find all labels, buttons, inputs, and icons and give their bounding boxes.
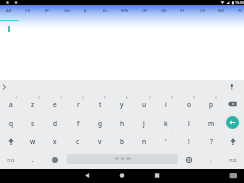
- staticText: ?123: [7, 158, 15, 163]
- staticText: GH: [64, 8, 70, 13]
- button[interactable]: ,: [22, 151, 44, 169]
- staticText: 8: [171, 96, 173, 100]
- button[interactable]: EF: [38, 5, 57, 16]
- button[interactable]: j: [133, 114, 155, 132]
- button[interactable]: IJ: [76, 5, 95, 16]
- staticText: 3: [60, 96, 62, 100]
- staticText: t: [99, 100, 102, 109]
- button[interactable]: m: [200, 114, 222, 132]
- button[interactable]: ?123: [0, 151, 22, 169]
- staticText: a: [9, 100, 13, 109]
- button[interactable]: p: [200, 95, 222, 113]
- button[interactable]: [44, 151, 66, 169]
- button[interactable]: [163, 169, 244, 183]
- staticText: FR · ES · EN: [115, 157, 131, 161]
- button[interactable]: l: [178, 114, 200, 132]
- button[interactable]: MN: [115, 5, 134, 16]
- button[interactable]: AB: [0, 5, 18, 16]
- button[interactable]: [222, 132, 244, 150]
- button[interactable]: ?: [200, 132, 222, 150]
- button[interactable]: v: [89, 132, 111, 150]
- button[interactable]: GH: [57, 5, 76, 16]
- staticText: OP: [142, 8, 148, 13]
- button[interactable]: e: [44, 95, 66, 113]
- button[interactable]: g: [89, 114, 111, 132]
- button[interactable]: [178, 151, 200, 169]
- staticText: q: [9, 119, 14, 128]
- button[interactable]: UV: [193, 5, 212, 16]
- staticText: m: [208, 119, 215, 128]
- staticText: 7: [149, 96, 151, 100]
- staticText: 4: [82, 96, 84, 100]
- staticText: y: [120, 100, 124, 109]
- button[interactable]: OP: [135, 5, 154, 16]
- staticText: IJ: [84, 8, 87, 13]
- button[interactable]: !: [178, 132, 200, 150]
- staticText: i: [165, 100, 167, 109]
- staticText: ": [171, 133, 173, 137]
- button[interactable]: c: [67, 132, 89, 150]
- staticText: 0: [215, 96, 217, 100]
- button[interactable]: d: [44, 114, 66, 132]
- button[interactable]: [0, 80, 14, 95]
- button[interactable]: r: [67, 95, 89, 113]
- button[interactable]: y: [111, 95, 133, 113]
- button[interactable]: ': [155, 132, 177, 150]
- button[interactable]: a: [0, 95, 22, 113]
- button[interactable]: f: [67, 114, 89, 132]
- button[interactable]: [224, 80, 244, 95]
- button[interactable]: t: [89, 95, 111, 113]
- button[interactable]: z: [22, 95, 44, 113]
- button[interactable]: [82, 169, 163, 183]
- staticText: r: [77, 100, 80, 109]
- button[interactable]: [222, 95, 244, 113]
- staticText: l: [188, 119, 190, 128]
- button[interactable]: CD: [18, 5, 37, 16]
- staticText: p: [209, 100, 214, 109]
- staticText: CD: [25, 8, 31, 13]
- staticText: AB: [6, 8, 12, 13]
- staticText: 6: [126, 96, 128, 100]
- button[interactable]: o: [178, 95, 200, 113]
- button[interactable]: s: [22, 114, 44, 132]
- staticText: 10:06: [235, 0, 244, 5]
- staticText: v: [98, 137, 102, 146]
- button[interactable]: k: [155, 114, 177, 132]
- staticText: u: [142, 100, 147, 109]
- staticText: WX: [218, 8, 225, 13]
- button[interactable]: n: [133, 132, 155, 150]
- staticText: k: [164, 119, 168, 128]
- button[interactable]: x: [44, 132, 66, 150]
- button[interactable]: FR · ES · EN: [67, 154, 178, 164]
- staticText: ST: [180, 8, 185, 13]
- button[interactable]: h: [111, 114, 133, 132]
- button[interactable]: i: [155, 95, 177, 113]
- staticText: YZ: [238, 8, 243, 13]
- staticText: e: [53, 100, 57, 109]
- staticText: d: [53, 119, 58, 128]
- button[interactable]: QR: [154, 5, 173, 16]
- staticText: c: [76, 137, 80, 146]
- button[interactable]: b: [111, 132, 133, 150]
- staticText: s: [31, 119, 35, 128]
- button[interactable]: u: [133, 95, 155, 113]
- staticText: ?123: [229, 158, 237, 163]
- button[interactable]: ?123: [222, 151, 244, 169]
- staticText: KL: [103, 8, 108, 13]
- staticText: ,: [32, 156, 34, 164]
- button[interactable]: w: [22, 132, 44, 150]
- staticText: QR: [161, 8, 167, 13]
- button[interactable]: [226, 116, 239, 129]
- staticText: .: [210, 156, 212, 164]
- button[interactable]: YZ: [231, 5, 244, 16]
- button[interactable]: ST: [173, 5, 192, 16]
- button[interactable]: q: [0, 114, 22, 132]
- staticText: w: [30, 137, 36, 146]
- button[interactable]: [0, 132, 22, 150]
- staticText: g: [98, 119, 103, 128]
- button[interactable]: WX: [212, 5, 231, 16]
- staticText: UV: [200, 8, 206, 13]
- button[interactable]: KL: [96, 5, 115, 16]
